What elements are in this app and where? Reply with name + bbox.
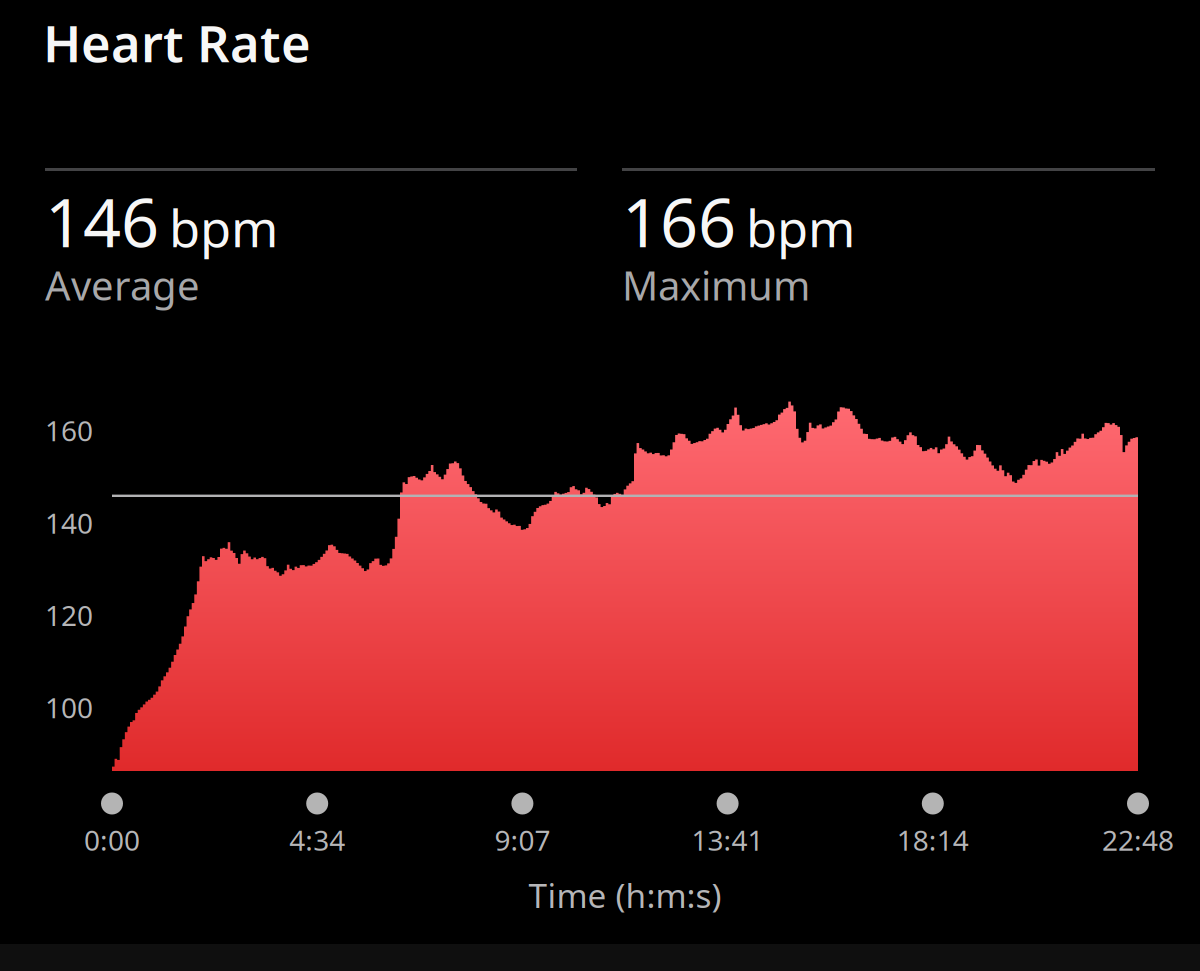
staticText: 18:14 [897,821,969,859]
staticText: 140 [45,504,93,541]
staticText: bpm [746,194,855,261]
staticText: 146 [45,177,159,265]
staticText: 22:48 [1102,821,1174,859]
staticText: Maximum [622,258,810,312]
staticText: 160 [45,412,93,449]
button[interactable]: Heart rate chart, 0:00 to 22:48 [112,396,1138,771]
staticText: Average [45,258,200,312]
staticText: 166 [622,177,736,265]
button[interactable]: 166 [622,168,1155,312]
staticText: Time (h:m:s) [528,873,721,917]
staticText: 4:34 [289,821,345,859]
staticText: Heart Rate [43,9,311,76]
staticText: 0:00 [84,821,140,859]
staticText: 13:41 [692,821,764,859]
staticText: bpm [169,194,278,261]
button[interactable]: 146 [45,168,577,312]
staticText: 100 [45,689,93,726]
staticText: 120 [45,596,93,634]
staticText: 9:07 [494,821,550,859]
